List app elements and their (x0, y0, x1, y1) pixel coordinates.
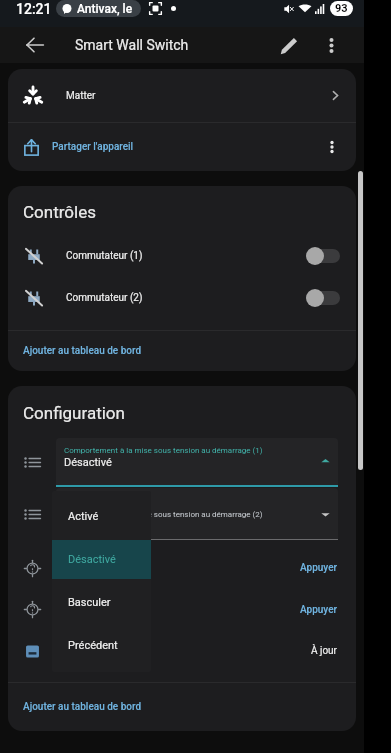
button[interactable]: More options (315, 130, 349, 164)
staticText: Basculer (68, 596, 111, 609)
button[interactable]: More options (315, 27, 348, 63)
button[interactable]: Partager l'appareil (8, 123, 356, 171)
staticText: Smart Wall Switch (75, 37, 189, 53)
button[interactable]: Comportement à la mise sous tension au d… (56, 438, 338, 487)
staticText: Précédent (68, 639, 118, 652)
staticText: 12:21 (16, 1, 52, 17)
staticText: Appuyer (300, 604, 338, 616)
button[interactable]: À jour (8, 630, 356, 672)
button[interactable]: Activé (52, 495, 151, 538)
staticText: Comportement à la mise sous tension au d… (64, 510, 263, 519)
button[interactable]: Ajouter au tableau de bord (8, 683, 356, 731)
staticText: Contrôles (23, 202, 96, 222)
staticText: Activé (68, 510, 99, 523)
staticText: Commutateur (1) (66, 250, 143, 262)
button[interactable]: Appuyer (8, 589, 356, 630)
staticText: 93 (335, 2, 348, 15)
button[interactable]: Toggle switch (306, 288, 340, 308)
staticText: Ajouter au tableau de bord (23, 345, 142, 357)
button[interactable]: Commutateur (1) (8, 235, 356, 277)
staticText: Désactivé (64, 456, 112, 469)
button[interactable]: Commutateur (2) (8, 277, 356, 319)
staticText: Antivax, le (77, 2, 133, 16)
button[interactable]: Matter (8, 69, 356, 122)
button[interactable]: Basculer (52, 581, 151, 624)
button[interactable]: Appuyer (8, 547, 356, 589)
button[interactable]: Edit (269, 27, 310, 63)
staticText: Commutateur (2) (66, 292, 143, 304)
staticText: Appuyer (300, 562, 338, 574)
button[interactable]: Toggle switch (306, 246, 340, 266)
staticText: Partager l'appareil (52, 141, 134, 153)
staticText: Désactivé (68, 553, 116, 566)
staticText: Ajouter au tableau de bord (23, 701, 142, 713)
button[interactable]: Comportement à la mise sous tension au d… (56, 488, 338, 540)
staticText: Matter (66, 90, 96, 102)
button[interactable]: Back (17, 27, 52, 63)
staticText: À jour (311, 645, 338, 657)
button[interactable]: Précédent (52, 624, 151, 667)
staticText: Comportement à la mise sous tension au d… (64, 446, 263, 455)
button[interactable]: Désactivé (52, 538, 151, 581)
button[interactable]: Ajouter au tableau de bord (8, 331, 356, 371)
staticText: Configuration (23, 403, 125, 423)
